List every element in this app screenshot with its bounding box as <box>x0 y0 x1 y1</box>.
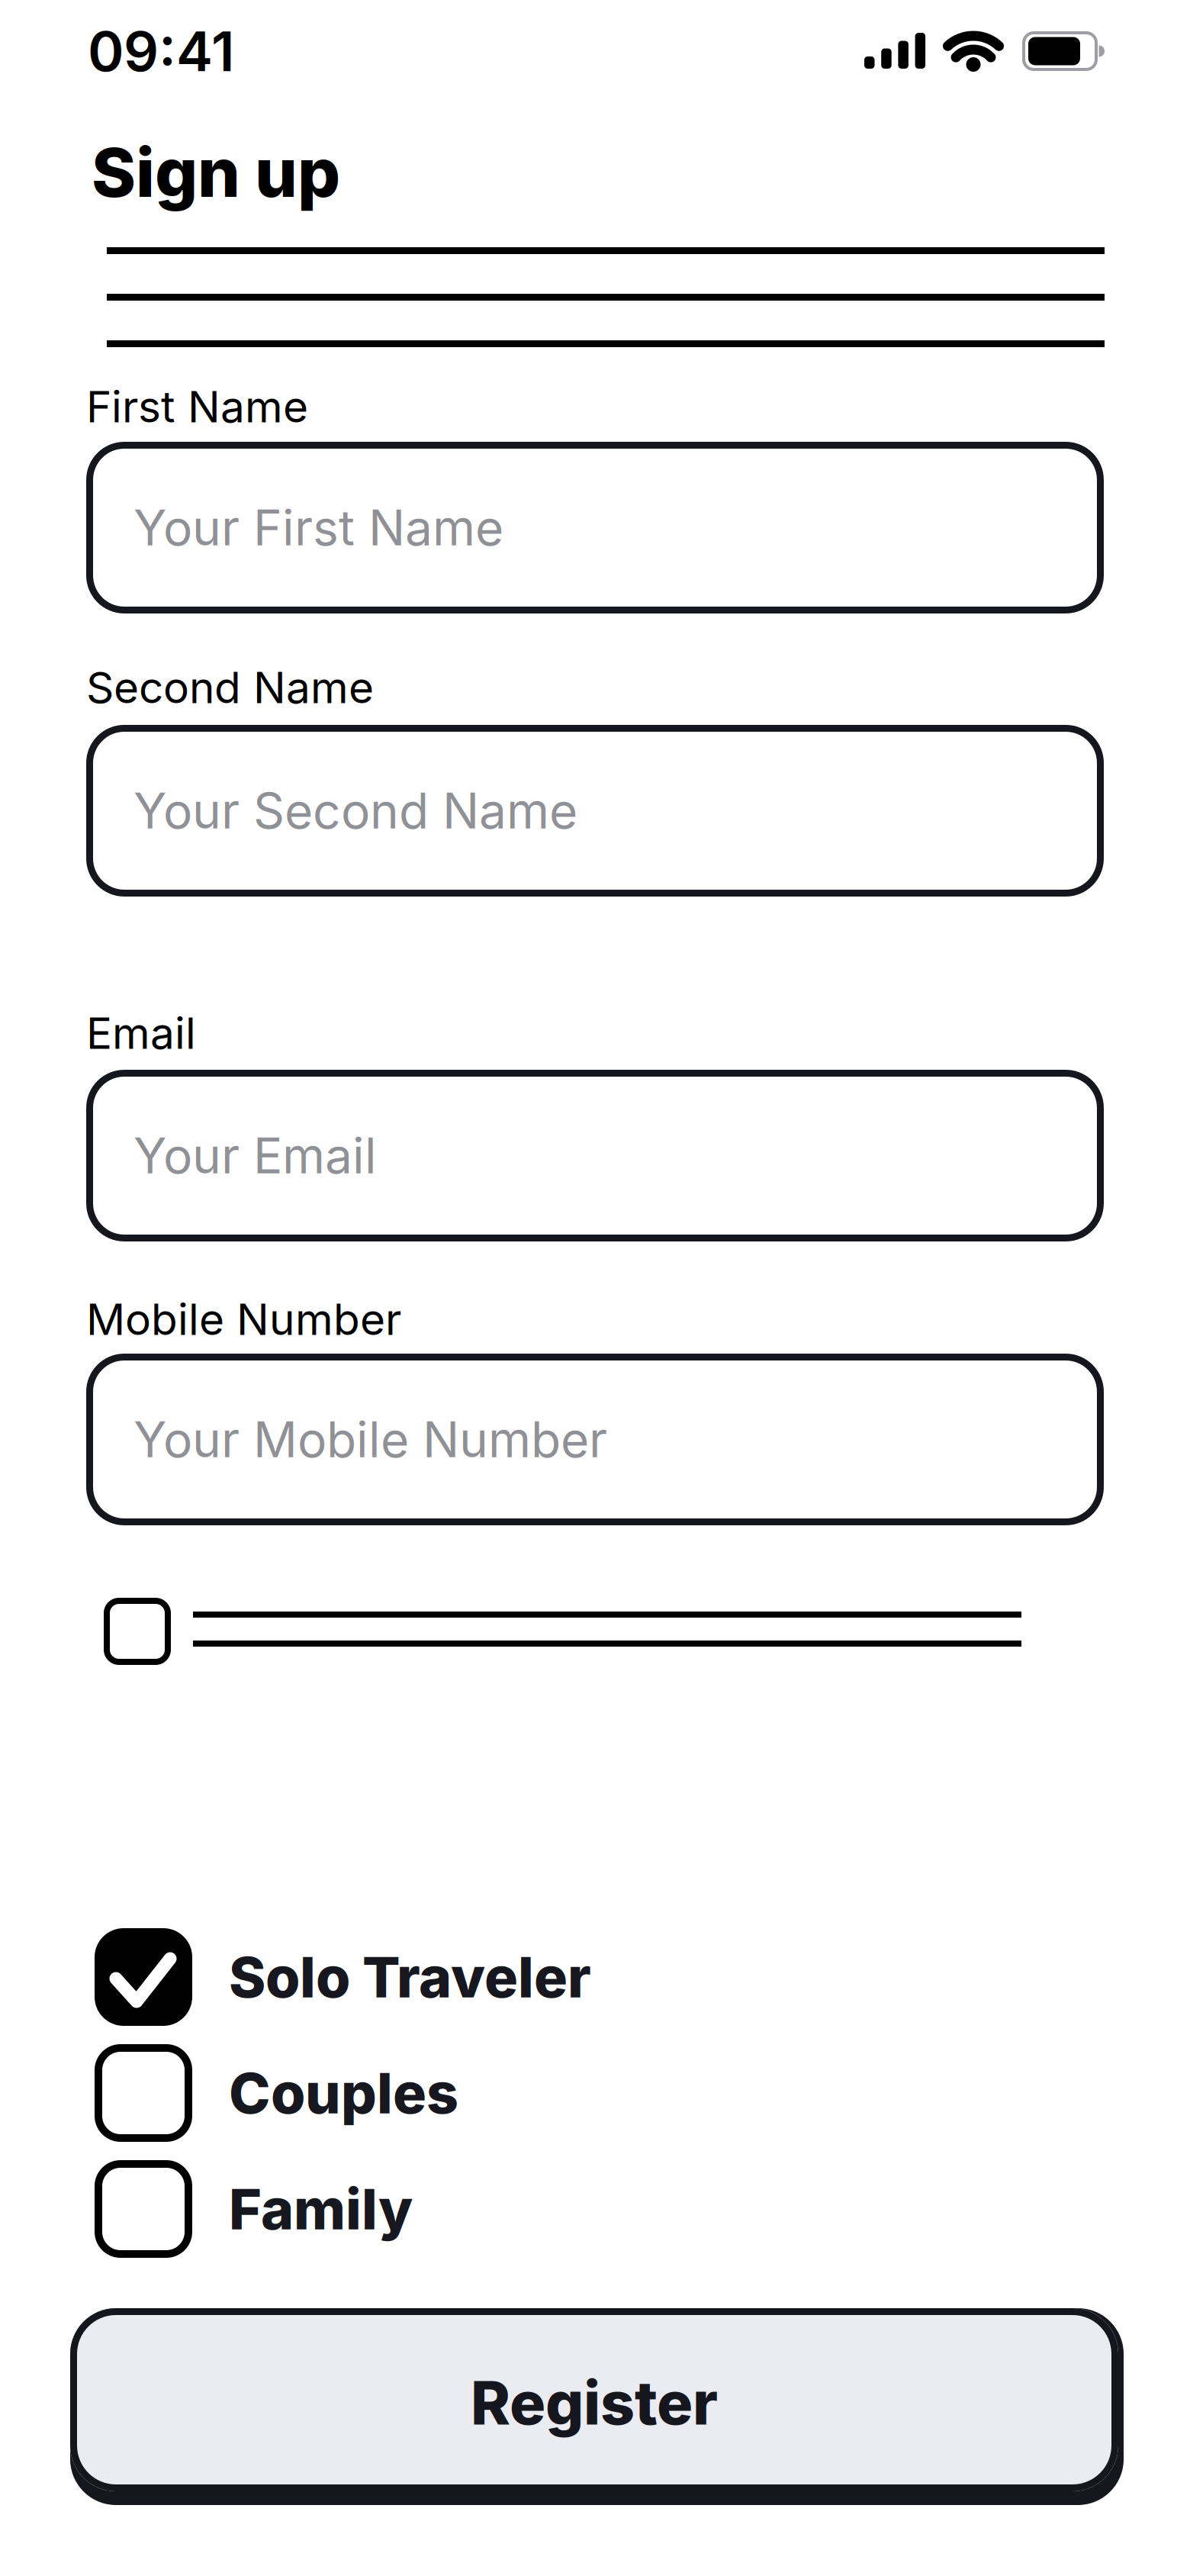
button[interactable]: Register <box>70 2308 1118 2491</box>
button[interactable]: Your First Name <box>86 442 1104 613</box>
staticText: Mobile Number <box>86 1293 401 1345</box>
staticText: 09:41 <box>88 18 234 84</box>
button[interactable]: Solo Traveler <box>95 1928 591 2026</box>
staticText: Couples <box>229 2059 458 2127</box>
staticText: Your First Name <box>133 498 503 557</box>
button[interactable]: Family <box>95 2160 413 2258</box>
staticText: Your Email <box>133 1126 377 1185</box>
staticText: Family <box>229 2175 413 2243</box>
button[interactable]: Your Mobile Number <box>86 1354 1104 1525</box>
staticText: Solo Traveler <box>229 1943 591 2011</box>
button[interactable]: Agree to terms <box>0 1598 1021 1665</box>
staticText: Your Second Name <box>133 781 577 840</box>
button[interactable]: Your Email <box>86 1070 1104 1241</box>
button[interactable]: Your Second Name <box>86 725 1104 897</box>
staticText: First Name <box>86 381 308 433</box>
staticText: Email <box>86 1007 196 1059</box>
button[interactable]: Couples <box>95 2044 458 2142</box>
staticText: Sign up <box>92 132 340 213</box>
staticText: Your Mobile Number <box>133 1410 607 1469</box>
staticText: Second Name <box>86 661 374 714</box>
staticText: Register <box>471 2366 718 2439</box>
